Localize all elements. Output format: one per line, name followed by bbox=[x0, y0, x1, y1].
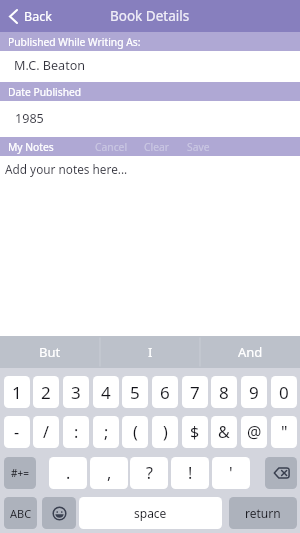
button[interactable]: / bbox=[33, 416, 59, 448]
staticText: - bbox=[14, 421, 20, 443]
button[interactable]: ) bbox=[152, 416, 178, 448]
button[interactable]: Backspace bbox=[265, 457, 297, 489]
button[interactable]: ; bbox=[93, 416, 119, 448]
button[interactable]: And bbox=[200, 336, 300, 368]
button[interactable]: : bbox=[63, 416, 89, 448]
button[interactable]: 4 bbox=[93, 376, 119, 408]
button[interactable]: 1 bbox=[4, 376, 30, 408]
staticText: . bbox=[66, 462, 71, 484]
staticText: Cancel bbox=[95, 140, 128, 153]
staticText: But bbox=[39, 343, 61, 361]
button[interactable]: space bbox=[79, 497, 222, 529]
staticText: 1985 bbox=[15, 110, 44, 127]
staticText: 2 bbox=[41, 381, 51, 404]
button[interactable]: , bbox=[90, 457, 128, 489]
button[interactable]: 0 bbox=[271, 376, 297, 408]
staticText: #+= bbox=[11, 466, 29, 480]
staticText: 9 bbox=[249, 381, 259, 404]
button[interactable]: I bbox=[100, 336, 200, 368]
staticText: My Notes bbox=[8, 140, 54, 154]
button[interactable]: " bbox=[271, 416, 297, 448]
button[interactable]: 9 bbox=[241, 376, 267, 408]
staticText: Published While Writing As: bbox=[8, 35, 141, 49]
staticText: @ bbox=[247, 421, 262, 443]
staticText: 5 bbox=[130, 381, 140, 404]
staticText: Clear bbox=[144, 140, 170, 153]
button[interactable]: & bbox=[211, 416, 237, 448]
staticText: M.C. Beaton bbox=[14, 57, 86, 74]
staticText: $ bbox=[190, 421, 200, 443]
button[interactable]: #+= bbox=[4, 457, 36, 489]
staticText: 4 bbox=[101, 381, 111, 404]
staticText: ) bbox=[163, 421, 168, 443]
button[interactable]: ! bbox=[171, 457, 209, 489]
staticText: space bbox=[134, 505, 167, 521]
staticText: Date Published bbox=[8, 85, 82, 99]
button[interactable]: 6 bbox=[152, 376, 178, 408]
button[interactable]: ? bbox=[130, 457, 168, 489]
staticText: : bbox=[74, 421, 79, 443]
staticText: ? bbox=[146, 462, 153, 484]
button[interactable]: return bbox=[229, 497, 297, 529]
staticText: ! bbox=[188, 462, 193, 484]
staticText: 0 bbox=[279, 381, 289, 404]
button[interactable]: Save bbox=[182, 137, 215, 156]
button[interactable]: 7 bbox=[182, 376, 208, 408]
staticText: 8 bbox=[219, 381, 229, 404]
staticText: Add your notes here... bbox=[5, 161, 128, 177]
staticText: Book Details bbox=[110, 7, 190, 25]
staticText: 1 bbox=[12, 381, 22, 404]
button[interactable]: 3 bbox=[63, 376, 89, 408]
button[interactable]: Emoji bbox=[42, 497, 76, 529]
staticText: 3 bbox=[71, 381, 81, 404]
button[interactable]: Clear bbox=[139, 137, 175, 156]
button[interactable]: ( bbox=[122, 416, 148, 448]
button[interactable]: 5 bbox=[122, 376, 148, 408]
button[interactable]: Cancel bbox=[90, 137, 133, 156]
button[interactable]: 2 bbox=[33, 376, 59, 408]
staticText: ' bbox=[229, 462, 233, 484]
button[interactable]: 8 bbox=[211, 376, 237, 408]
staticText: return bbox=[245, 505, 281, 521]
button[interactable]: @ bbox=[241, 416, 267, 448]
staticText: & bbox=[218, 421, 230, 443]
button[interactable]: - bbox=[4, 416, 30, 448]
staticText: Save bbox=[187, 140, 210, 153]
staticText: / bbox=[43, 421, 49, 443]
staticText: I bbox=[148, 343, 153, 361]
button[interactable]: $ bbox=[182, 416, 208, 448]
button[interactable]: But bbox=[0, 336, 100, 368]
staticText: ABC bbox=[10, 506, 32, 521]
staticText: , bbox=[107, 462, 112, 484]
button[interactable]: ABC bbox=[4, 497, 37, 529]
staticText: Back bbox=[24, 8, 52, 25]
staticText: ( bbox=[133, 421, 138, 443]
staticText: ; bbox=[104, 421, 109, 443]
staticText: " bbox=[281, 421, 288, 443]
staticText: And bbox=[238, 343, 263, 361]
button[interactable]: ' bbox=[212, 457, 250, 489]
staticText: 7 bbox=[190, 381, 200, 404]
button[interactable]: Back bbox=[0, 3, 62, 30]
staticText: 6 bbox=[160, 381, 170, 404]
button[interactable]: . bbox=[49, 457, 87, 489]
